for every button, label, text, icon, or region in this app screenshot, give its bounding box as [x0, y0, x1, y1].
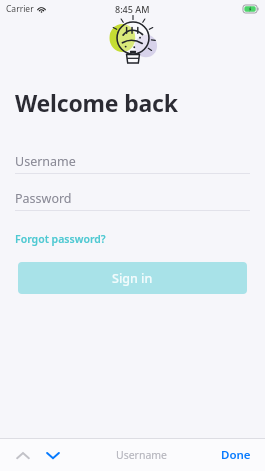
staticText: Password	[15, 190, 72, 207]
staticText: Welcome back	[15, 87, 178, 118]
staticText: Sign in	[112, 270, 153, 287]
button[interactable]: Next field	[40, 442, 66, 468]
button[interactable]: Sign in	[18, 262, 247, 294]
button[interactable]: Done	[217, 443, 255, 467]
button[interactable]: Forgot password?	[15, 232, 106, 246]
staticText: Carrier	[6, 3, 34, 15]
staticText: 8:45 AM	[115, 3, 150, 15]
staticText: Username	[15, 153, 76, 170]
staticText: Done	[221, 447, 251, 463]
button[interactable]: Previous field	[10, 442, 36, 468]
button[interactable]: Password	[15, 187, 250, 211]
staticText: Username	[66, 448, 217, 462]
staticText: Forgot password?	[15, 232, 106, 246]
button[interactable]: Username	[15, 150, 250, 174]
